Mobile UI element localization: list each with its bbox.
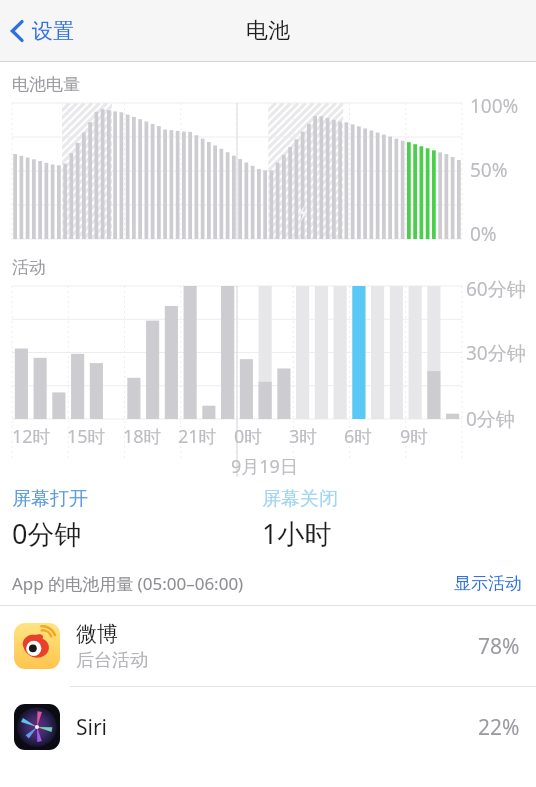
staticText: App 的电池用量 (05:00–06:00) <box>12 572 244 595</box>
staticText: 21时 <box>178 424 217 449</box>
staticText: 设置 <box>32 18 74 44</box>
staticText: 显示活动 <box>454 573 522 594</box>
staticText: 50% <box>470 157 508 183</box>
other: 微博 <box>14 623 60 669</box>
other: Siri <box>14 704 60 750</box>
staticText: 30分钟 <box>466 340 526 366</box>
staticText: 后台活动 <box>76 649 148 672</box>
staticText: 3时 <box>289 424 318 449</box>
staticText: 电池电量 <box>12 74 80 95</box>
staticText: 100% <box>470 93 519 119</box>
staticText: 6时 <box>344 424 373 449</box>
staticText: 屏幕关闭 <box>262 487 338 511</box>
staticText: 0% <box>470 221 497 247</box>
staticText: 15时 <box>67 424 106 449</box>
staticText: 78% <box>478 632 520 661</box>
staticText: 0分钟 <box>12 515 82 552</box>
button[interactable]: Siri <box>0 687 536 767</box>
staticText: 9时 <box>400 424 429 449</box>
staticText: Siri <box>76 713 108 742</box>
button[interactable]: 微博 <box>0 606 536 686</box>
staticText: 活动 <box>12 257 46 278</box>
button[interactable]: 屏幕关闭 <box>262 487 338 552</box>
staticText: 12时 <box>12 424 51 449</box>
button[interactable]: 设置 <box>4 10 80 52</box>
staticText: 0分钟 <box>466 406 515 432</box>
staticText: 电池 <box>246 17 290 45</box>
staticText: 18时 <box>123 424 162 449</box>
staticText: 1小时 <box>262 515 332 552</box>
staticText: 0时 <box>234 424 263 449</box>
button[interactable]: 显示活动 <box>454 573 522 594</box>
button[interactable]: 屏幕打开 <box>12 487 262 552</box>
staticText: 微博 <box>76 621 118 647</box>
staticText: 22% <box>478 713 520 742</box>
staticText: 屏幕打开 <box>12 487 88 511</box>
staticText: 9月19日 <box>231 454 298 479</box>
staticText: 60分钟 <box>466 276 526 302</box>
